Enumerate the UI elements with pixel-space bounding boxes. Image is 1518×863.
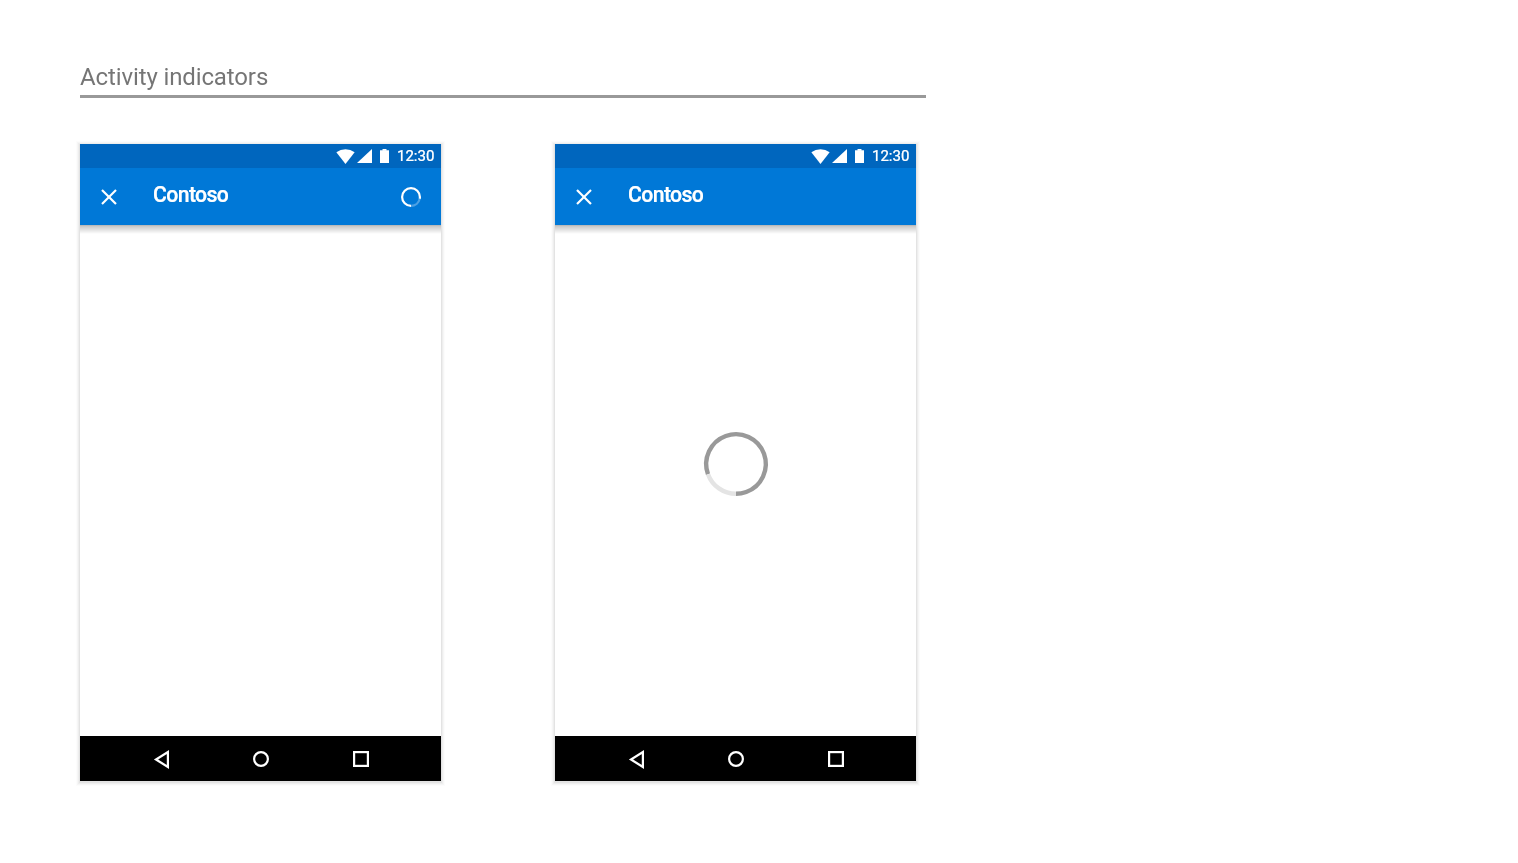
button[interactable]: Home bbox=[239, 737, 283, 781]
staticText: 12:30 bbox=[397, 147, 435, 165]
button[interactable]: Recent apps bbox=[814, 737, 858, 781]
button[interactable]: Close bbox=[565, 178, 603, 216]
button[interactable]: Close bbox=[90, 178, 128, 216]
staticText: Contoso bbox=[153, 182, 229, 207]
staticText: Contoso bbox=[628, 182, 704, 207]
button[interactable]: Home bbox=[714, 737, 758, 781]
button[interactable]: Loading bbox=[391, 177, 431, 217]
button[interactable]: Back bbox=[139, 737, 183, 781]
staticText: Activity indicators bbox=[80, 63, 269, 91]
button[interactable]: Back bbox=[614, 737, 658, 781]
staticText: 12:30 bbox=[872, 147, 910, 165]
button[interactable]: Recent apps bbox=[339, 737, 383, 781]
